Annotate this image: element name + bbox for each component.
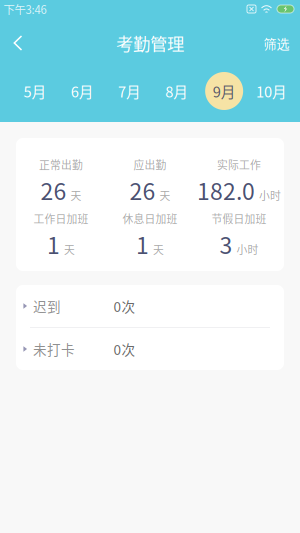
staticText: 9月 — [213, 80, 236, 102]
staticText: 0次 — [113, 296, 135, 316]
staticText: 5月 — [23, 80, 46, 102]
button[interactable]: 筛选 — [253, 26, 300, 60]
staticText: 未打卡 — [33, 339, 75, 359]
button[interactable]: 8月 — [153, 72, 200, 110]
staticText: 小时 — [236, 241, 258, 257]
staticText: 实际工作 — [217, 157, 261, 172]
staticText: 小时 — [259, 187, 281, 203]
staticText: 正常出勤 — [39, 157, 83, 172]
staticText: 6月 — [71, 80, 94, 102]
staticText: 3 — [219, 227, 232, 261]
staticText: 休息日加班 — [122, 211, 177, 226]
staticText: 天 — [159, 187, 170, 203]
button[interactable]: Back — [0, 26, 36, 60]
staticText: 天 — [153, 241, 164, 257]
staticText: 182.0 — [197, 173, 255, 207]
staticText: 应出勤 — [133, 157, 166, 172]
button[interactable]: 6月 — [59, 72, 106, 110]
staticText: 8月 — [165, 80, 188, 102]
staticText: 26 — [40, 173, 66, 207]
staticText: 工作日加班 — [33, 211, 88, 226]
staticText: 下午3:46 — [3, 1, 46, 17]
staticText: 筛选 — [263, 33, 289, 52]
staticText: 7月 — [118, 80, 141, 102]
staticText: 0次 — [113, 339, 135, 359]
button[interactable]: 迟到 — [16, 285, 284, 327]
staticText: 天 — [70, 187, 81, 203]
staticText: 26 — [129, 173, 155, 207]
staticText: 迟到 — [33, 296, 61, 316]
button[interactable]: 9月 — [200, 72, 248, 110]
staticText: 1 — [47, 227, 60, 261]
button[interactable]: 10月 — [248, 72, 295, 110]
button[interactable]: 未打卡 — [16, 328, 284, 370]
staticText: 1 — [136, 227, 149, 261]
button[interactable]: 5月 — [11, 72, 59, 110]
staticText: 天 — [64, 241, 75, 257]
staticText: 考勤管理 — [116, 30, 184, 56]
staticText: 节假日加班 — [211, 211, 266, 226]
staticText: 10月 — [256, 80, 287, 102]
button[interactable]: 7月 — [106, 72, 153, 110]
